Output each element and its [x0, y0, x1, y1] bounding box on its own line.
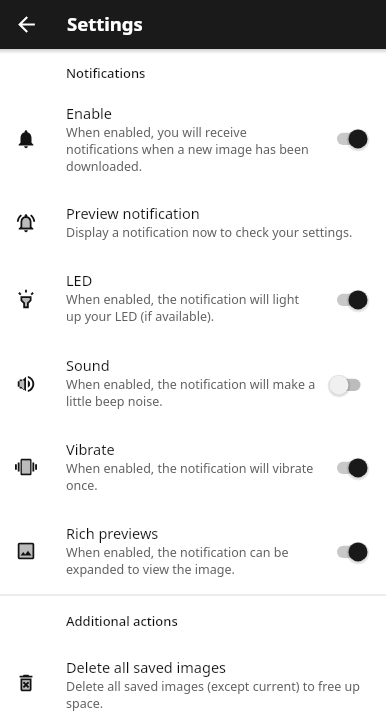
- staticText: When enabled, the notification will vibr…: [66, 460, 317, 494]
- button[interactable]: [0, 262, 386, 334]
- staticText: Additional actions: [66, 612, 178, 630]
- button[interactable]: Navigate back: [8, 7, 44, 43]
- button[interactable]: [0, 94, 386, 183]
- staticText: Delete all saved images (except current)…: [66, 678, 362, 712]
- staticText: Delete all saved images: [66, 657, 227, 677]
- staticText: When enabled, you will receive notificat…: [66, 124, 317, 175]
- staticText: Enable: [66, 103, 112, 123]
- staticText: Sound: [66, 355, 110, 375]
- button[interactable]: Switch on: [333, 537, 373, 565]
- staticText: Preview notification: [66, 203, 200, 223]
- button[interactable]: [0, 346, 386, 418]
- staticText: When enabled, the notification will make…: [66, 376, 317, 410]
- staticText: Rich previews: [66, 523, 159, 543]
- staticText: Display a notification now to check your…: [66, 224, 353, 241]
- staticText: When enabled, the notification can be ex…: [66, 544, 317, 578]
- staticText: LED: [66, 270, 93, 290]
- button[interactable]: [0, 514, 386, 586]
- button[interactable]: Switch on: [333, 285, 373, 313]
- button[interactable]: Switch on: [333, 453, 373, 481]
- staticText: Notifications: [66, 64, 146, 82]
- staticText: Settings: [67, 11, 143, 36]
- button[interactable]: [0, 430, 386, 502]
- staticText: Vibrate: [66, 439, 115, 459]
- staticText: When enabled, the notification will ligh…: [66, 291, 317, 325]
- button[interactable]: [0, 195, 386, 250]
- button[interactable]: Switch off: [333, 370, 373, 398]
- button[interactable]: [0, 648, 386, 720]
- button[interactable]: Switch on: [333, 124, 373, 152]
